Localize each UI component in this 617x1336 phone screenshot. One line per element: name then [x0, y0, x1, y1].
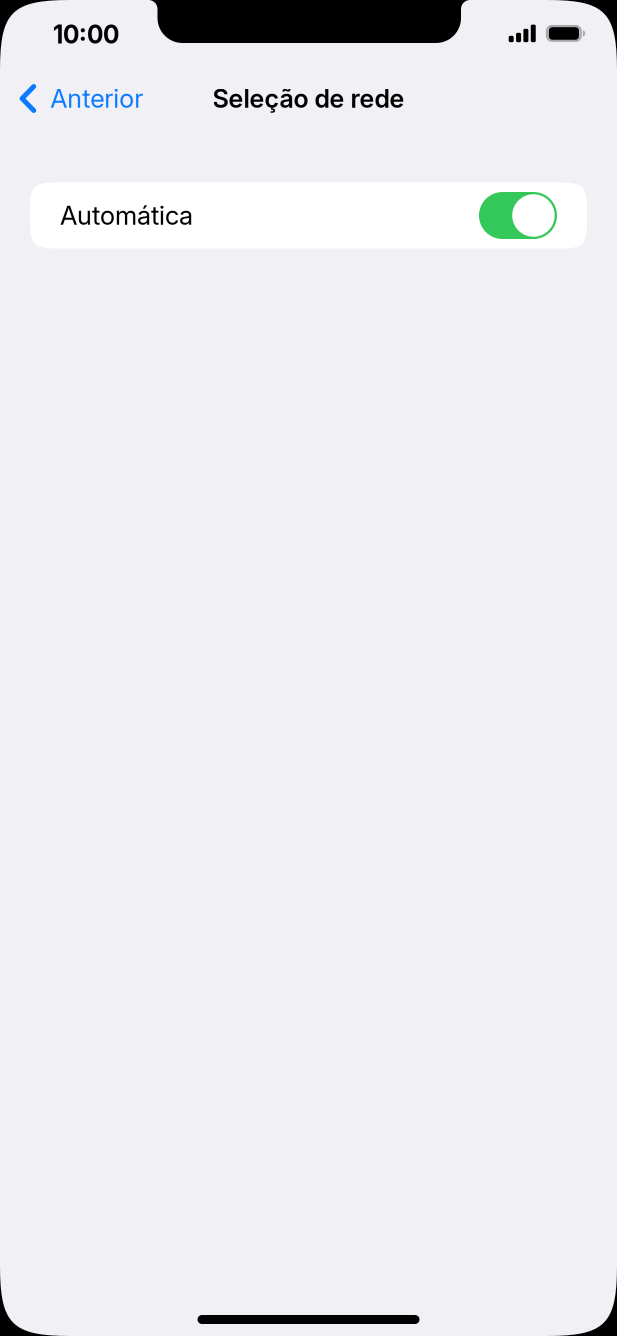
staticText: 10:00 — [53, 20, 119, 49]
staticText: Seleção de rede — [212, 83, 404, 114]
button[interactable]: Automática — [479, 192, 557, 239]
staticText: Automática — [60, 200, 193, 231]
staticText: Anterior — [50, 83, 143, 114]
button[interactable]: Anterior — [0, 72, 157, 124]
